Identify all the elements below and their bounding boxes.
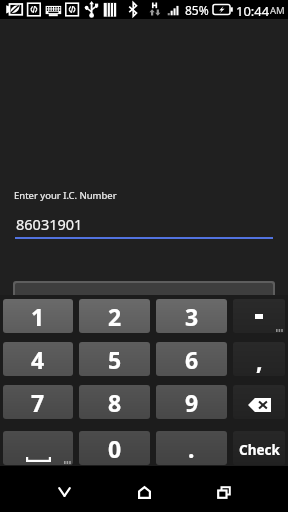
staticText: 85% (185, 2, 209, 18)
staticText: 2 (108, 301, 122, 332)
staticText: 9 (185, 387, 199, 418)
button[interactable]: 5 (79, 342, 150, 376)
button[interactable]: Space (3, 431, 73, 465)
staticText: AM (270, 4, 285, 17)
staticText: 8 (108, 387, 122, 418)
button[interactable]: 1 (3, 299, 73, 333)
button[interactable]: 0 (79, 431, 150, 465)
button[interactable]: . (156, 431, 227, 465)
staticText: 86031901 (16, 214, 83, 234)
button[interactable]: 8 (79, 385, 150, 419)
staticText: Check (126, 292, 163, 310)
staticText: 5 (108, 344, 122, 375)
button[interactable]: Back (42, 470, 86, 512)
staticText: Check (239, 441, 280, 459)
staticText: 10:44 (236, 2, 270, 20)
other: Backspace (248, 398, 271, 412)
staticText: 7 (31, 387, 45, 418)
button[interactable]: Dash (233, 299, 285, 333)
button[interactable]: Backspace (233, 385, 285, 419)
staticText: 4 (31, 344, 45, 375)
button[interactable]: Check (233, 431, 285, 465)
button[interactable]: Home (122, 470, 166, 512)
staticText: 6 (185, 344, 199, 375)
staticText: Enter your I.C. Number (14, 189, 117, 202)
button[interactable]: Check (15, 283, 273, 319)
staticText: 0 (108, 433, 122, 464)
staticText: 1 (31, 301, 45, 332)
staticText: . (188, 433, 195, 464)
button[interactable]: 4 (3, 342, 73, 376)
button[interactable]: 2 (79, 299, 150, 333)
button[interactable]: 3 (156, 299, 227, 333)
button[interactable]: Recents (202, 470, 246, 512)
other: Space (26, 457, 51, 462)
button[interactable]: 9 (156, 385, 227, 419)
button[interactable]: 7 (3, 385, 73, 419)
staticText: , (256, 345, 263, 376)
staticText: 3 (185, 301, 199, 332)
button[interactable]: , (233, 342, 285, 376)
button[interactable]: 6 (156, 342, 227, 376)
